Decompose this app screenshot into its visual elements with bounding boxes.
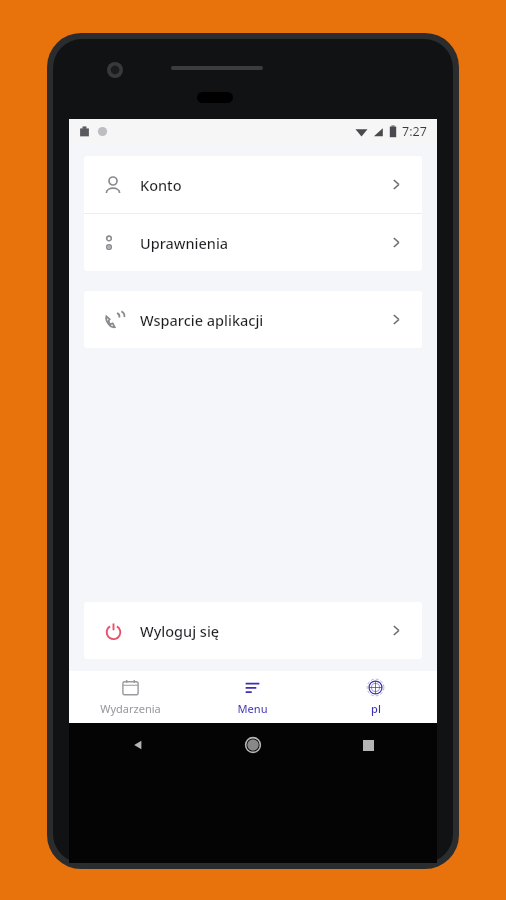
staticText: Wyloguj się: [140, 621, 220, 641]
button[interactable]: Uprawnienia: [84, 214, 422, 271]
staticText: Menu: [237, 701, 268, 716]
button[interactable]: Konto: [84, 156, 422, 213]
button[interactable]: Menu: [191, 671, 314, 723]
staticText: Uprawnienia: [140, 233, 229, 253]
button[interactable]: Home: [238, 730, 268, 760]
button[interactable]: Wydarzenia: [69, 671, 191, 723]
button[interactable]: Back: [123, 730, 153, 760]
button[interactable]: Wyloguj się: [84, 602, 422, 659]
staticText: Wydarzenia: [100, 701, 161, 716]
button[interactable]: Recent apps: [353, 730, 383, 760]
button[interactable]: pl: [314, 671, 437, 723]
staticText: Wsparcie aplikacji: [140, 310, 264, 330]
staticText: Konto: [140, 175, 182, 195]
staticText: 7:27: [402, 123, 427, 140]
staticText: pl: [371, 701, 381, 716]
button[interactable]: Wsparcie aplikacji: [84, 291, 422, 348]
